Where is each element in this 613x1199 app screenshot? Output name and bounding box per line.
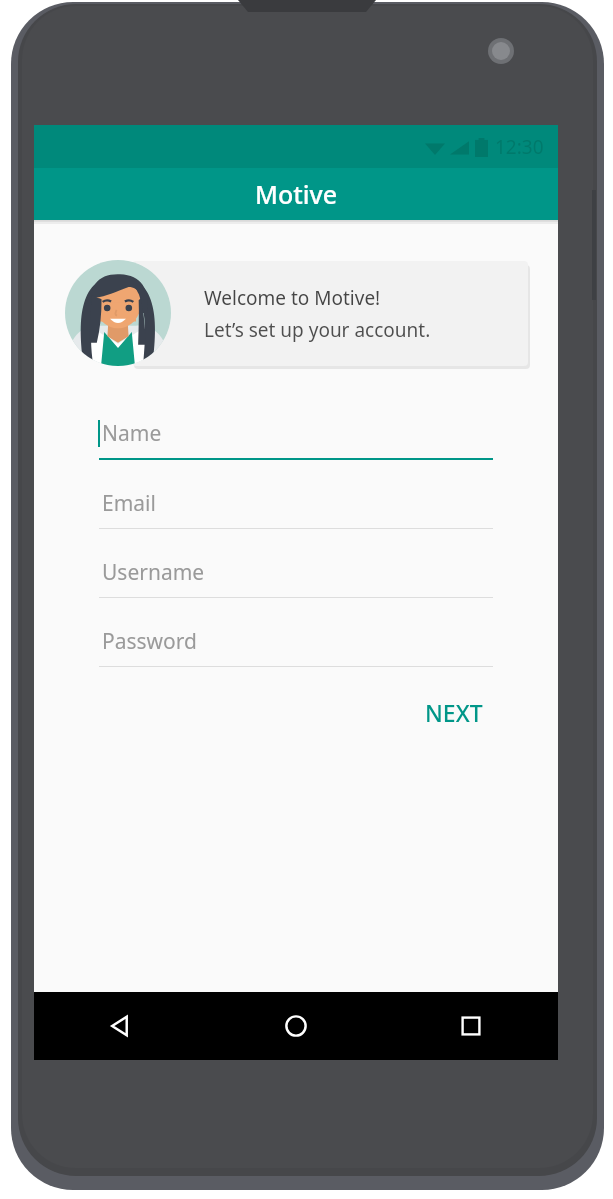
button[interactable]: Home [208, 992, 383, 1060]
staticText: Welcome to Motive! [204, 285, 381, 311]
button[interactable]: Recent apps [383, 992, 558, 1060]
staticText: Password [102, 627, 197, 656]
staticText: Let’s set up your account. [204, 317, 431, 343]
staticText: NEXT [425, 697, 483, 728]
button[interactable]: Password [99, 624, 493, 667]
button[interactable]: Name [99, 416, 493, 460]
staticText: Name [102, 419, 162, 448]
staticText: Motive [255, 177, 338, 211]
staticText: 12:30 [495, 134, 544, 160]
staticText: Username [102, 558, 205, 587]
button[interactable]: Email [99, 486, 493, 529]
button[interactable]: Back [34, 992, 208, 1060]
button[interactable]: Username [99, 555, 493, 598]
staticText: Email [102, 489, 156, 518]
button[interactable]: NEXT [415, 689, 493, 736]
button[interactable]: Welcome to Motive! [132, 261, 528, 366]
